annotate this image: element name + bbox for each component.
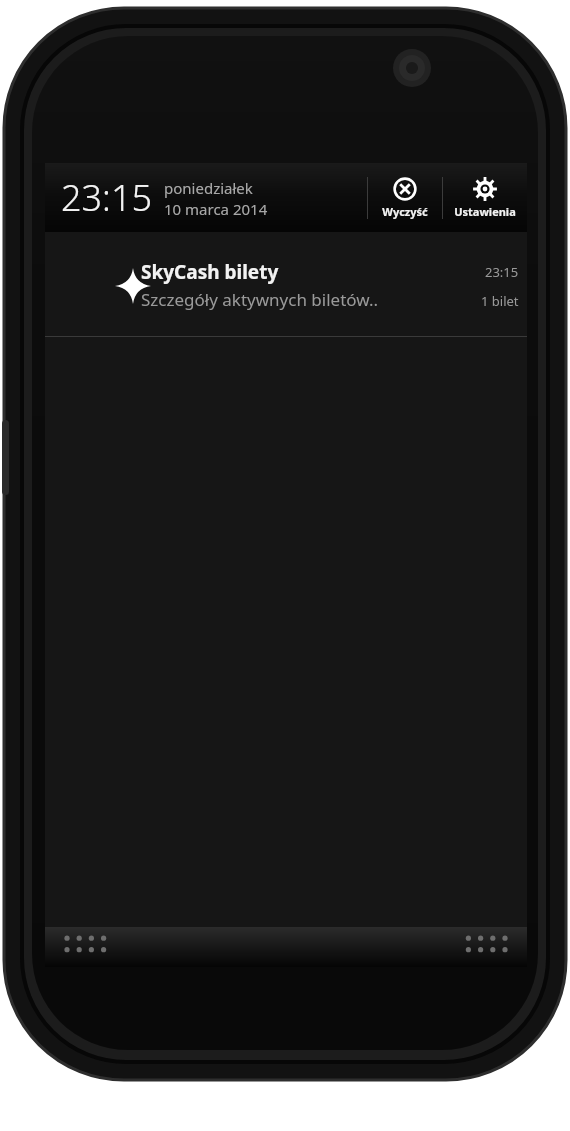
staticText: poniedziałek bbox=[164, 178, 253, 198]
staticText: Wyczyść bbox=[382, 204, 428, 219]
button[interactable]: Ustawienia bbox=[443, 163, 527, 232]
staticText: 1 bilet bbox=[481, 292, 519, 310]
button[interactable]: Close notification shade bbox=[45, 927, 527, 967]
staticText: Ustawienia bbox=[454, 204, 516, 219]
staticText: SkyCash bilety bbox=[141, 259, 279, 285]
staticText: Szczegóły aktywnych biletów.. bbox=[141, 288, 379, 311]
staticText: 23:15 bbox=[61, 173, 153, 222]
staticText: 10 marca 2014 bbox=[164, 199, 268, 219]
button[interactable]: Wyczyść bbox=[368, 163, 442, 232]
staticText: 23:15 bbox=[485, 263, 519, 281]
button[interactable]: SkyCash bilety bbox=[45, 232, 527, 337]
